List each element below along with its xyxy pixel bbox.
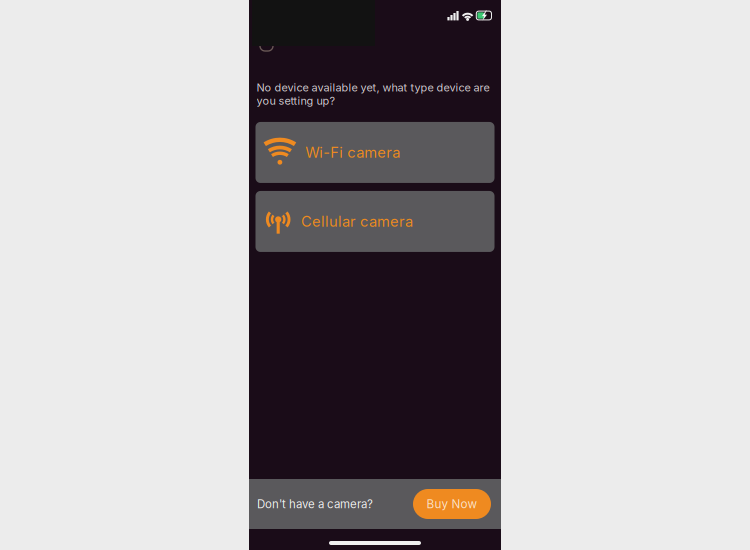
button[interactable]: Cellular camera <box>255 191 494 252</box>
button[interactable]: Wi-Fi camera <box>255 122 494 183</box>
staticText: Buy Now <box>426 497 477 511</box>
staticText: Wi-Fi camera <box>305 144 400 161</box>
button[interactable]: Buy Now <box>413 489 491 519</box>
staticText: Cellular camera <box>301 213 413 230</box>
staticText: Don't have a camera? <box>257 497 373 511</box>
staticText: No device available yet, what type devic… <box>256 81 489 107</box>
